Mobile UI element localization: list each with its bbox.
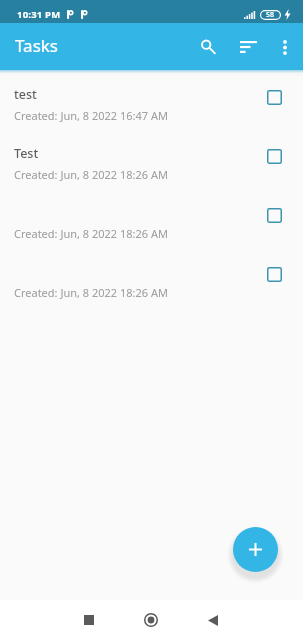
staticText: 10:31 PM [17, 8, 61, 21]
staticText: Created: Jun, 8 2022 18:26 AM [14, 285, 168, 300]
button[interactable]: More options [267, 29, 303, 65]
staticText: Test [14, 145, 39, 162]
button[interactable]: Home [134, 605, 168, 635]
button[interactable]: Created: Jun, 8 2022 18:26 AM [0, 196, 303, 255]
button[interactable]: Created: Jun, 8 2022 18:26 AM [0, 255, 303, 314]
staticText: 58 [266, 10, 275, 20]
button[interactable]: Test [0, 137, 303, 196]
button[interactable]: Mark task complete [261, 84, 287, 110]
button[interactable]: Back [196, 605, 230, 635]
button[interactable]: Mark task complete [261, 202, 287, 228]
staticText: test [14, 86, 37, 103]
button[interactable]: Recent apps [72, 605, 106, 635]
button[interactable]: Sort tasks [227, 27, 267, 67]
button[interactable]: Search [187, 27, 227, 67]
staticText: Created: Jun, 8 2022 18:26 AM [14, 226, 168, 241]
staticText: Created: Jun, 8 2022 16:47 AM [14, 108, 168, 123]
button[interactable]: test [0, 78, 303, 137]
staticText: Created: Jun, 8 2022 18:26 AM [14, 167, 168, 182]
button[interactable]: Mark task complete [261, 261, 287, 287]
button[interactable]: Add task [233, 527, 278, 572]
staticText: Tasks [15, 34, 58, 57]
button[interactable]: Mark task complete [261, 143, 287, 169]
